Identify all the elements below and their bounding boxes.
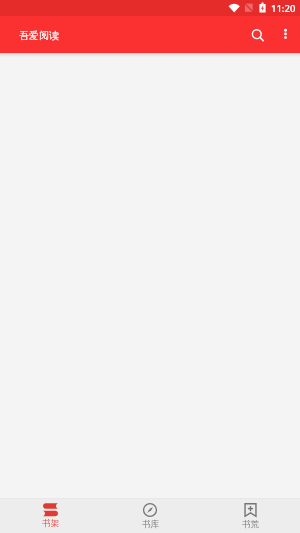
button[interactable]: 书荒 bbox=[200, 499, 300, 533]
staticText: 吾爱阅读 bbox=[19, 29, 59, 42]
staticText: 书架 bbox=[42, 518, 59, 529]
staticText: 11:20 bbox=[271, 2, 296, 15]
button[interactable]: 书库 bbox=[100, 499, 200, 533]
button[interactable]: 书架 bbox=[0, 499, 100, 533]
button[interactable]: Search bbox=[243, 20, 271, 48]
button[interactable]: More options bbox=[272, 20, 300, 48]
staticText: 书荒 bbox=[242, 519, 259, 530]
staticText: 书库 bbox=[142, 519, 159, 530]
